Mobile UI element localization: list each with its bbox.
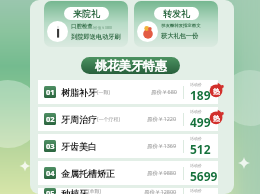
staticText: 04 (46, 168, 55, 178)
button[interactable]: 来院礼 (64, 7, 109, 20)
staticText: 热 (213, 87, 220, 96)
staticText: 金属托槽矫正 (61, 168, 115, 179)
button[interactable]: 02 (38, 107, 218, 131)
other: Electric toothbrush (50, 24, 66, 40)
button[interactable]: 05 (38, 188, 218, 194)
button[interactable]: Electric toothbrush (44, 1, 128, 47)
staticText: 热 (213, 114, 220, 123)
staticText: 到院即送电动牙刷 (71, 33, 121, 41)
staticText: 获大礼包一份 (161, 32, 199, 40)
staticText: 桃花美牙特惠 (95, 58, 167, 73)
staticText: 03 (46, 141, 55, 151)
staticText: 来院礼 (73, 8, 100, 19)
button[interactable]: 03 (38, 134, 218, 158)
staticText: 原价￥9880 (147, 169, 177, 177)
staticText: 原价￥1369 (147, 142, 177, 150)
staticText: 牙齿美白 (61, 141, 97, 152)
button[interactable]: 转发礼 (154, 7, 199, 20)
staticText: (单颗) (88, 188, 102, 194)
button[interactable]: 01 (38, 80, 218, 104)
staticText: 活动价 (190, 188, 202, 193)
staticText: 原价￥1220 (147, 115, 177, 123)
staticText: (价值￥380) (93, 25, 113, 30)
staticText: 种植牙 (61, 188, 88, 194)
staticText: 活动价 (190, 136, 202, 141)
staticText: 转发礼 (163, 8, 190, 19)
staticText: 499 (190, 114, 211, 130)
staticText: 朋友圈转发指定图文 (161, 23, 201, 29)
staticText: 活动价 (190, 163, 202, 168)
button[interactable]: 04 (38, 161, 218, 185)
staticText: 189 (190, 87, 211, 103)
other: Hot item (209, 82, 225, 98)
staticText: 树脂补牙 (61, 87, 97, 98)
staticText: 5699 (190, 168, 218, 184)
other: Hot item (209, 109, 225, 125)
staticText: (一颗) (97, 89, 111, 96)
staticText: 原价￥12800 (144, 188, 177, 194)
staticText: 口腔检查 (71, 23, 93, 30)
staticText: 01 (46, 87, 55, 97)
staticText: 02 (46, 114, 55, 124)
other: Gift bag (140, 24, 156, 40)
staticText: 牙周治疗 (61, 114, 97, 125)
staticText: 活动价 (190, 82, 202, 87)
staticText: 原价￥680 (151, 88, 177, 96)
button[interactable]: 桃花美牙特惠 (81, 57, 180, 74)
staticText: 512 (190, 141, 211, 157)
staticText: (一个疗程) (97, 116, 121, 123)
staticText: 05 (46, 188, 55, 194)
button[interactable]: Gift bag (134, 1, 218, 47)
staticText: 活动价 (190, 109, 202, 114)
